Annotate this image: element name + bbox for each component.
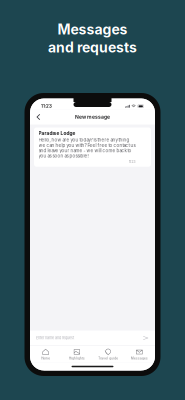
staticText: Hello, how are you today? Is there anyth… bbox=[38, 137, 135, 159]
staticText: New message bbox=[75, 114, 110, 120]
staticText: Enter name and request bbox=[36, 336, 74, 340]
button[interactable]: Send bbox=[142, 334, 149, 341]
staticText: Travel guide bbox=[98, 357, 118, 360]
button[interactable]: Home bbox=[30, 348, 61, 360]
staticText: and requests bbox=[48, 39, 137, 56]
staticText: Messages bbox=[131, 357, 148, 360]
staticText: 11:23 bbox=[128, 160, 135, 164]
button[interactable]: Messages bbox=[124, 348, 155, 360]
staticText: Messages bbox=[57, 21, 127, 38]
staticText: Highlights bbox=[69, 357, 85, 360]
staticText: 11:23 bbox=[41, 104, 52, 109]
button[interactable]: Highlights bbox=[61, 348, 92, 360]
button[interactable]: Back bbox=[33, 111, 44, 122]
staticText: Paradise Lodge bbox=[38, 130, 75, 136]
staticText: Home bbox=[41, 357, 50, 360]
button[interactable]: Travel guide bbox=[92, 348, 124, 360]
